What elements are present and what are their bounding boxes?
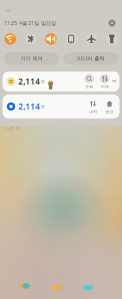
button[interactable]: Flashlight — [106, 33, 117, 45]
button[interactable]: 기기 제어 — [4, 52, 59, 64]
button[interactable]: Sound — [45, 33, 57, 45]
staticText: 원 — [41, 104, 45, 109]
staticText: ▮▮ — [6, 8, 10, 12]
staticText: 원 — [41, 79, 45, 84]
staticText: 조회 — [85, 84, 93, 89]
button[interactable]: 송금 — [102, 99, 116, 113]
staticText: 이체 — [101, 84, 109, 89]
staticText: 2,114 — [18, 101, 40, 112]
staticText: 미디어 출력 — [77, 55, 104, 62]
button[interactable]: 이체 — [98, 74, 112, 88]
staticText: 11:25 4월 21일 일요일 — [4, 19, 56, 27]
button[interactable]: 미디어 출력 — [63, 52, 118, 64]
button[interactable]: 2,114 — [2, 71, 119, 91]
button[interactable]: 2,114 — [2, 94, 119, 118]
button[interactable]: Flight mode — [86, 33, 97, 45]
button[interactable]: 조회 — [82, 74, 96, 88]
button[interactable]: Bluetooth — [25, 33, 36, 45]
staticText: 내역 — [89, 109, 97, 114]
staticText: 2,114 — [18, 76, 40, 87]
staticText: • 오후 3:2 — [3, 125, 20, 131]
staticText: 송금 — [105, 109, 113, 114]
button[interactable]: Wi-Fi — [4, 33, 16, 45]
button[interactable]: Auto rotate — [65, 33, 77, 45]
button[interactable]: 내역 — [86, 99, 100, 113]
button[interactable]: Settings — [106, 18, 117, 28]
staticText: 기기 제어 — [20, 55, 42, 62]
